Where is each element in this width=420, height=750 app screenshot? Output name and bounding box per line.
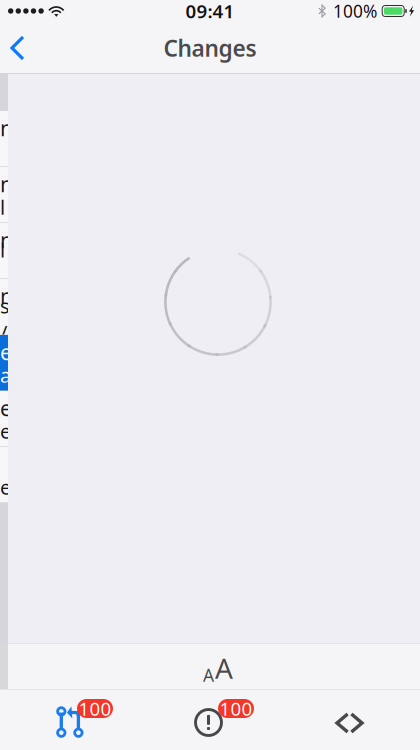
staticText: 100% <box>333 0 377 22</box>
staticText: s/ <box>0 292 10 345</box>
staticText: e <box>0 394 12 422</box>
staticText: n <box>0 114 13 142</box>
staticText: l. <box>0 236 5 289</box>
staticText: l <box>0 194 5 220</box>
staticText: A <box>215 649 233 687</box>
staticText: 09:41 <box>185 0 234 23</box>
button[interactable]: Text size <box>173 637 255 695</box>
button[interactable]: Code <box>280 689 420 750</box>
staticText: n <box>0 170 13 198</box>
staticText: e <box>0 474 11 500</box>
staticText: a <box>0 362 11 388</box>
staticText: n <box>0 282 13 310</box>
button[interactable]: Back <box>0 25 35 71</box>
staticText: A <box>203 664 214 687</box>
staticText: n <box>0 226 13 254</box>
button[interactable]: Issues, 100 unread <box>140 689 280 750</box>
staticText: e <box>0 418 11 444</box>
staticText: Changes <box>163 33 256 63</box>
staticText: 100 <box>219 696 252 721</box>
staticText: e <box>0 338 12 366</box>
button[interactable]: Pull requests, 100 unread <box>0 689 140 750</box>
staticText: 100 <box>78 696 111 721</box>
